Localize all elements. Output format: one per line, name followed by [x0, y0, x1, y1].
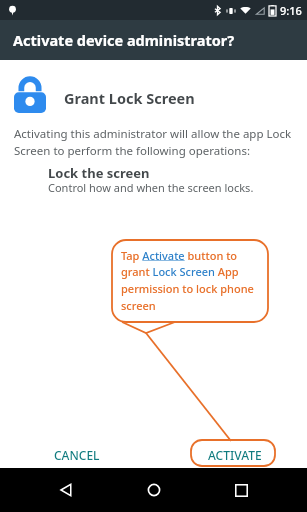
- staticText: CANCEL: [54, 447, 100, 463]
- button[interactable]: CANCEL: [44, 441, 110, 469]
- staticText: Control how and when the screen locks.: [48, 180, 254, 195]
- button[interactable]: ACTIVATE: [198, 441, 272, 469]
- button[interactable]: Recent apps: [219, 468, 263, 512]
- staticText: ACTIVATE: [208, 447, 262, 463]
- button[interactable]: Home: [132, 468, 176, 512]
- staticText: 9:16: [280, 3, 302, 18]
- staticText: Activate device administrator?: [13, 30, 235, 50]
- button[interactable]: Back: [44, 468, 88, 512]
- staticText: Activating this administrator will allow…: [14, 126, 292, 158]
- staticText: Tap Activate button to grant Lock Screen…: [121, 248, 262, 313]
- other: Lock: [14, 76, 46, 113]
- staticText: Lock the screen: [48, 164, 150, 182]
- staticText: Grant Lock Screen: [64, 88, 195, 108]
